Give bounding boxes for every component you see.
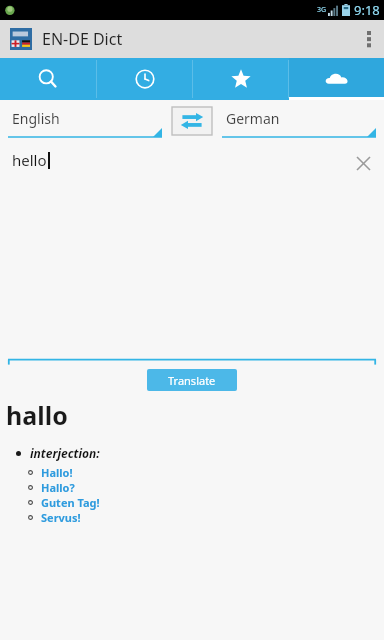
button[interactable]: German [222, 100, 376, 142]
button[interactable]: Guten Tag! [6, 495, 384, 510]
button[interactable]: Online [289, 58, 384, 100]
button[interactable]: hello [8, 150, 350, 170]
staticText: Hallo? [41, 480, 75, 495]
button[interactable]: Favorites [193, 58, 288, 100]
staticText: hello [12, 150, 47, 170]
staticText: 3G [317, 5, 327, 15]
button[interactable]: Clear text [350, 150, 376, 176]
button[interactable]: Search [0, 58, 96, 100]
button[interactable]: Translate [147, 369, 237, 391]
staticText: EN-DE Dict [42, 28, 123, 50]
staticText: Translate [168, 373, 216, 388]
button[interactable]: Swap languages [172, 107, 212, 135]
button[interactable]: Servus! [6, 510, 384, 525]
button[interactable]: More options [354, 20, 384, 58]
button[interactable]: History [97, 58, 192, 100]
staticText: Guten Tag! [41, 495, 100, 510]
staticText: Hallo! [41, 465, 73, 480]
button[interactable]: English [8, 100, 162, 142]
staticText: 9:18 [354, 1, 380, 19]
staticText: German [226, 109, 280, 128]
button[interactable]: Hallo! [6, 465, 384, 480]
staticText: English [12, 109, 60, 128]
staticText: hallo [6, 398, 68, 432]
staticText: Servus! [41, 510, 81, 525]
button[interactable]: Hallo? [6, 480, 384, 495]
staticText: interjection: [30, 445, 100, 461]
